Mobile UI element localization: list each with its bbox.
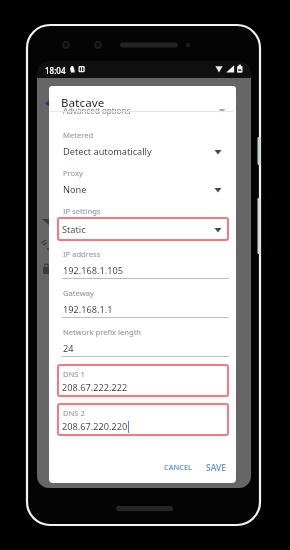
staticText: Detect automatically	[63, 145, 152, 158]
staticText: CANCEL	[164, 462, 193, 472]
button[interactable]: 192.168.1.1	[49, 303, 236, 317]
staticText: IP address	[63, 249, 101, 259]
staticText: SAVE	[206, 462, 226, 474]
button[interactable]: SAVE	[201, 458, 231, 478]
button[interactable]: None	[49, 183, 236, 197]
staticText: Advanced options	[63, 105, 131, 116]
staticText: Static	[62, 223, 86, 236]
staticText: DNS 1	[63, 369, 85, 379]
button[interactable]: 192.168.1.105	[49, 264, 236, 278]
button[interactable]: 24	[49, 342, 236, 356]
button[interactable]: Detect automatically	[49, 145, 236, 159]
staticText: 208.67.220.220	[62, 420, 128, 433]
button[interactable]: Static	[57, 217, 229, 241]
staticText: 18:04	[45, 65, 66, 76]
staticText: 208.67.222.222	[62, 381, 128, 394]
staticText: None	[63, 183, 87, 196]
staticText: IP settings	[63, 206, 101, 216]
button[interactable]: CANCEL	[159, 458, 198, 476]
staticText: Batcave	[61, 95, 105, 111]
button[interactable]: DNS 1	[57, 364, 229, 397]
staticText: Metered	[63, 130, 94, 140]
staticText: Gateway	[63, 288, 94, 298]
staticText: Network prefix length	[63, 327, 142, 337]
staticText: 192.168.1.1	[63, 303, 113, 316]
staticText: DNS 2	[63, 408, 85, 418]
button[interactable]: DNS 2	[57, 403, 229, 436]
staticText: Proxy	[63, 168, 83, 178]
staticText: 24	[63, 342, 74, 355]
staticText: 192.168.1.105	[63, 264, 123, 277]
